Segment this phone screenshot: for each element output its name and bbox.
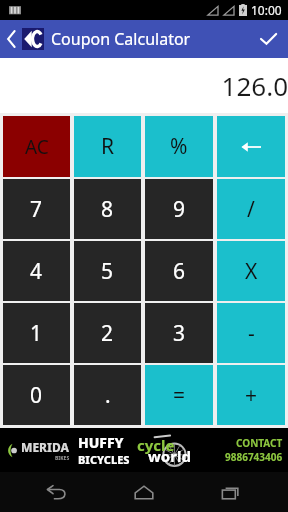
staticText: / (247, 195, 255, 224)
button[interactable]: = (145, 365, 213, 425)
button[interactable]: AC (3, 116, 70, 177)
staticText: BICYCLES (78, 452, 130, 467)
button[interactable]: Home (114, 472, 174, 512)
staticText: CONTACT (236, 436, 283, 450)
staticText: + (245, 381, 258, 410)
staticText: 3 (173, 319, 186, 348)
staticText: 7 (30, 195, 43, 224)
button[interactable]: . (74, 365, 141, 425)
button[interactable]: 9 (145, 179, 213, 239)
staticText: 9886743406 (225, 450, 283, 464)
button[interactable]: - (217, 303, 285, 363)
staticText: % (170, 132, 188, 161)
button[interactable]: 8 (74, 179, 141, 239)
button[interactable]: 7 (3, 179, 70, 239)
staticText: - (248, 319, 255, 348)
staticText: world (148, 446, 191, 466)
button[interactable]: 3 (145, 303, 213, 363)
staticText: 5 (101, 257, 114, 286)
staticText: cycle (137, 435, 175, 455)
staticText: 9 (173, 195, 186, 224)
button[interactable]: % (145, 116, 213, 177)
button[interactable]: Backspace (217, 116, 285, 177)
button[interactable]: + (217, 365, 285, 425)
button[interactable]: Back (27, 472, 87, 512)
staticText: HUFFY (78, 433, 124, 452)
button[interactable]: 4 (3, 241, 70, 301)
button[interactable]: Recent apps (201, 472, 261, 512)
staticText: Coupon Calculator (51, 28, 191, 50)
staticText: X (245, 257, 258, 286)
button[interactable]: 6 (145, 241, 213, 301)
staticText: 2 (101, 319, 114, 348)
button[interactable]: Back (0, 20, 22, 58)
staticText: BIKES (55, 455, 70, 462)
staticText: 126.0 (221, 68, 288, 103)
staticText: 10:00 (251, 2, 282, 18)
staticText: = (173, 381, 186, 410)
staticText: 1 (30, 319, 43, 348)
button[interactable]: 2 (74, 303, 141, 363)
button[interactable]: Advertisement (0, 428, 288, 472)
staticText: 8 (101, 195, 114, 224)
button[interactable]: X (217, 241, 285, 301)
button[interactable]: 0 (3, 365, 70, 425)
staticText: 6 (173, 257, 186, 286)
button[interactable]: / (217, 179, 285, 239)
staticText: 0 (30, 381, 43, 410)
staticText: . (105, 381, 111, 410)
button[interactable]: Done (248, 20, 288, 58)
staticText: MERIDA (21, 439, 70, 455)
button[interactable]: R (74, 116, 141, 177)
button[interactable]: 5 (74, 241, 141, 301)
button[interactable]: 1 (3, 303, 70, 363)
staticText: R (101, 132, 115, 161)
staticText: AC (25, 134, 49, 160)
staticText: 4 (30, 257, 43, 286)
